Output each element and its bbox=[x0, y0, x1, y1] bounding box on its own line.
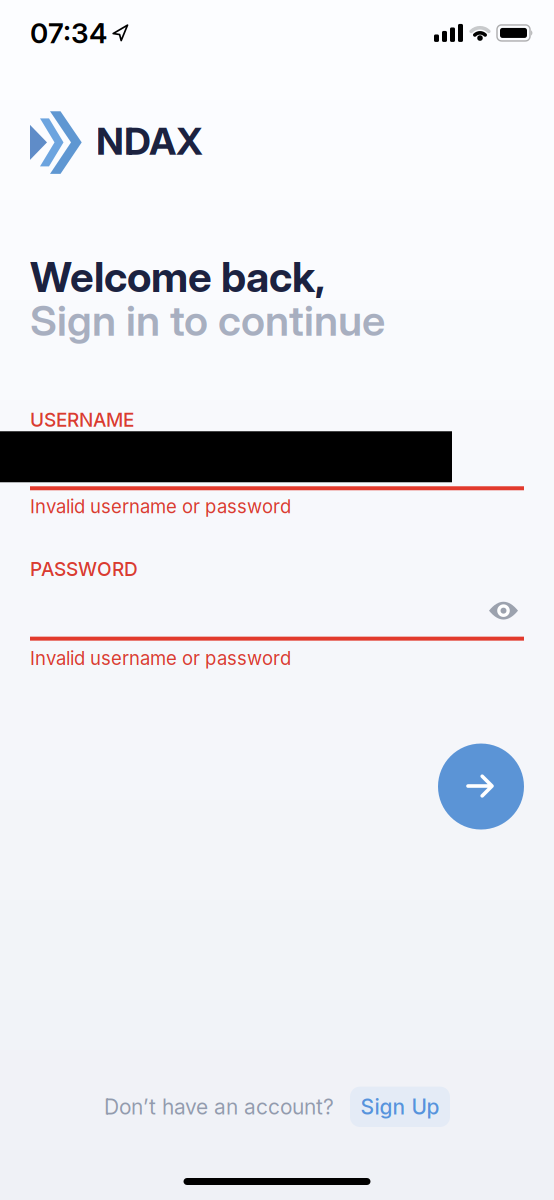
button[interactable] bbox=[438, 743, 524, 829]
staticText: NDAX bbox=[96, 118, 203, 164]
button[interactable]: Sign Up bbox=[350, 1087, 450, 1127]
button[interactable] bbox=[489, 601, 518, 621]
staticText: Welcome back, bbox=[30, 255, 325, 299]
staticText: Sign Up bbox=[360, 1094, 439, 1119]
staticText: PASSWORD bbox=[30, 558, 138, 581]
staticText: Invalid username or password bbox=[30, 495, 291, 518]
staticText: Don’t have an account? bbox=[104, 1094, 334, 1119]
staticText: Invalid username or password bbox=[30, 647, 291, 669]
staticText: 07:34 bbox=[30, 16, 107, 50]
staticText: USERNAME bbox=[30, 408, 134, 431]
staticText: Sign in to continue bbox=[30, 299, 385, 342]
